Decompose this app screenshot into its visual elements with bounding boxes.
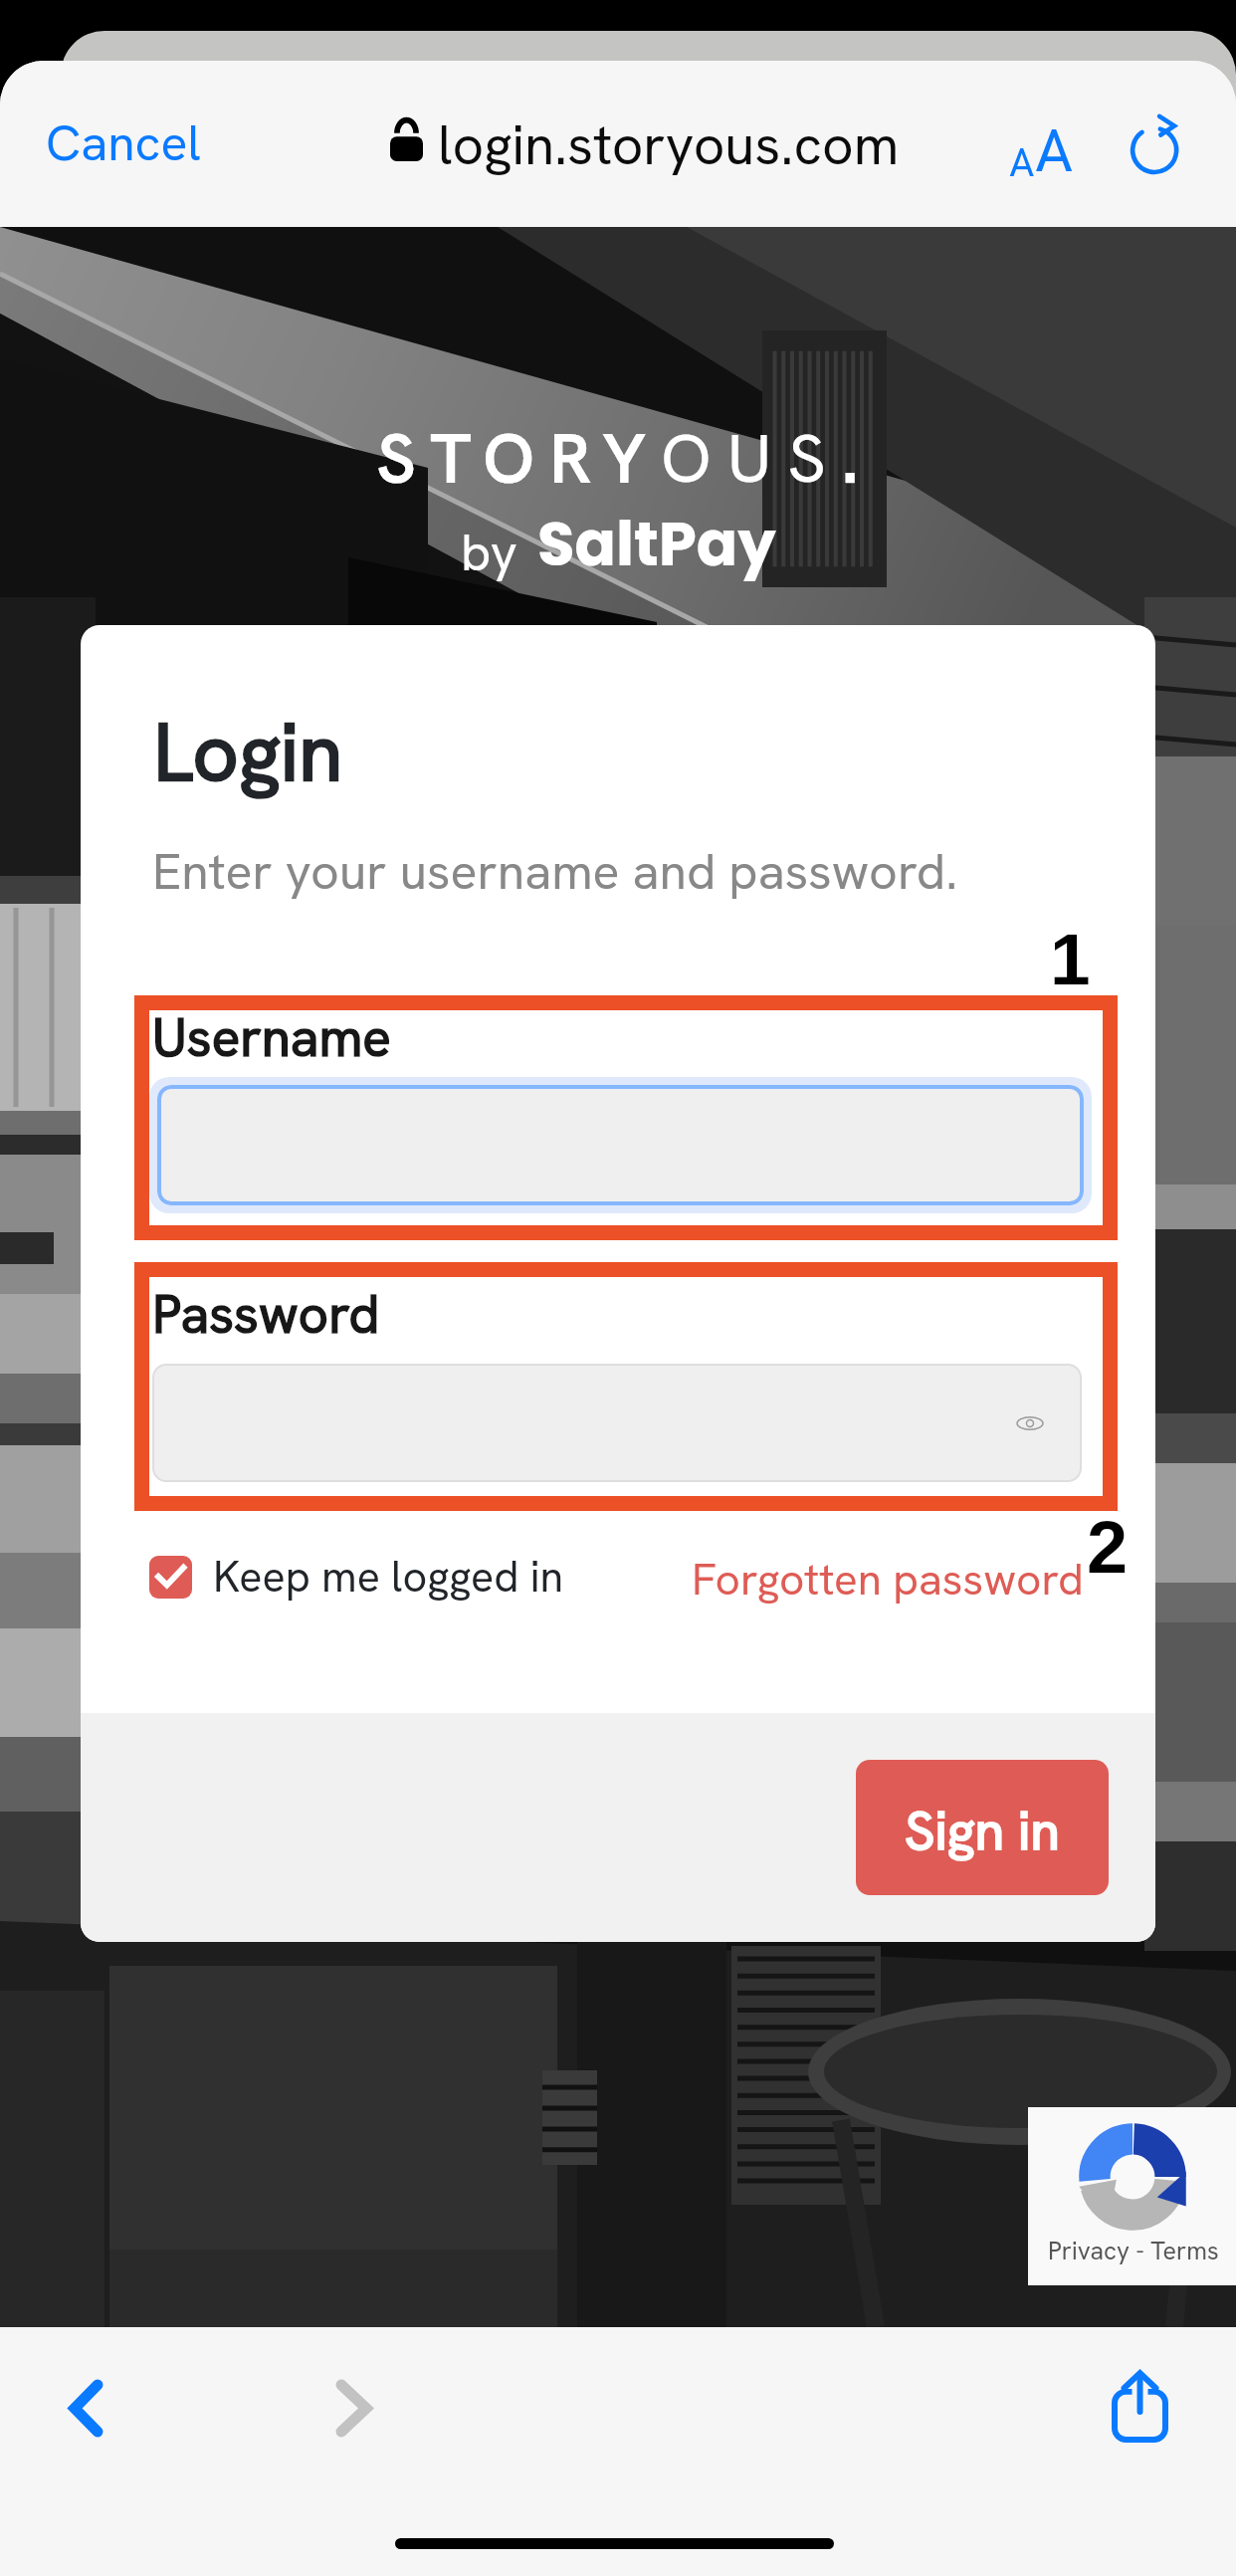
button[interactable]: Text size bbox=[991, 96, 1092, 205]
staticText: SaltPay bbox=[537, 502, 776, 586]
staticText: A bbox=[1009, 136, 1035, 188]
staticText: A bbox=[1035, 111, 1074, 189]
button[interactable]: Back bbox=[42, 2352, 131, 2455]
staticText: OUS bbox=[661, 414, 842, 503]
staticText: Sign in bbox=[905, 1796, 1060, 1865]
staticText: by bbox=[461, 519, 517, 586]
staticText: Password bbox=[152, 1280, 380, 1349]
staticText: 2 bbox=[1087, 1506, 1129, 1589]
staticText: 1 bbox=[1050, 919, 1091, 1000]
staticText: . bbox=[842, 414, 859, 503]
staticText: Privacy - Terms bbox=[1048, 2235, 1219, 2267]
button[interactable]: Forward bbox=[309, 2352, 398, 2455]
button[interactable]: Reload bbox=[1126, 114, 1187, 176]
staticText: login.storyous.com bbox=[438, 109, 900, 181]
button[interactable]: Share bbox=[1082, 2341, 1198, 2470]
button[interactable]: Cancel bbox=[26, 91, 221, 195]
staticText: Cancel bbox=[46, 110, 201, 175]
button[interactable] bbox=[152, 1364, 1082, 1482]
staticText: Login bbox=[153, 700, 343, 805]
staticText: Username bbox=[152, 1003, 391, 1072]
button[interactable] bbox=[157, 1085, 1084, 1205]
button[interactable]: Keep me logged in bbox=[143, 1541, 571, 1612]
button[interactable]: Sign in bbox=[856, 1760, 1109, 1895]
button[interactable]: reCAPTCHA privacy and terms bbox=[1028, 2107, 1236, 2285]
staticText: STORY bbox=[377, 414, 661, 503]
button[interactable]: Forgotten password bbox=[692, 1551, 1084, 1608]
staticText: Keep me logged in bbox=[213, 1549, 563, 1605]
staticText: Enter your username and password. bbox=[152, 839, 958, 904]
